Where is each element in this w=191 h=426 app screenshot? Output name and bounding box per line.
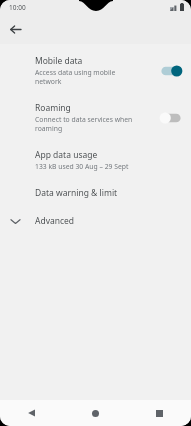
staticText: Access data using mobile network <box>35 68 116 86</box>
button[interactable]: App data usage <box>0 146 191 174</box>
staticText: Connect to data services when roaming <box>35 115 133 133</box>
staticText: Roaming <box>35 102 71 114</box>
button[interactable]: Roaming <box>0 99 191 136</box>
button[interactable]: Data warning & limit <box>0 184 191 202</box>
button[interactable]: Recent apps <box>127 400 191 426</box>
staticText: App data usage <box>35 149 98 161</box>
button[interactable]: On <box>159 64 183 78</box>
staticText: Mobile data <box>35 55 83 67</box>
button[interactable]: Back <box>5 19 25 39</box>
staticText: 133 kB used 30 Aug – 29 Sept <box>35 162 129 171</box>
staticText: Advanced <box>35 215 75 227</box>
staticText: Data warning & limit <box>35 187 118 199</box>
button[interactable]: Off <box>159 111 183 125</box>
button[interactable]: Mobile data <box>0 52 191 89</box>
button[interactable]: Home <box>63 400 127 426</box>
button[interactable]: Advanced <box>0 210 191 232</box>
staticText: 10:00 <box>9 3 26 12</box>
button[interactable]: Back <box>0 400 63 426</box>
